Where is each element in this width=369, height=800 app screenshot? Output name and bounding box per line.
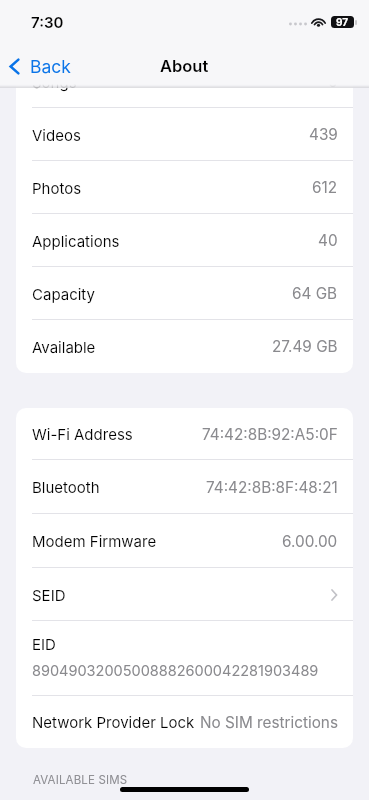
button[interactable]: Applications bbox=[16, 214, 353, 267]
button[interactable]: SEID bbox=[16, 568, 353, 621]
staticText: Network Provider Lock bbox=[32, 713, 195, 731]
button[interactable]: Wi-Fi Address bbox=[16, 408, 353, 460]
staticText: 64 GB bbox=[292, 284, 338, 303]
button[interactable]: Songs bbox=[16, 55, 353, 108]
staticText: Bluetooth bbox=[32, 478, 100, 496]
staticText: SEID bbox=[32, 586, 66, 604]
button[interactable]: Videos bbox=[16, 108, 353, 161]
button[interactable]: Bluetooth bbox=[16, 460, 353, 514]
button[interactable]: Modem Firmware bbox=[16, 514, 353, 568]
staticText: 89049032005008882600042281903489 bbox=[32, 662, 319, 680]
button[interactable]: Capacity bbox=[16, 267, 353, 320]
button[interactable]: Network Provider Lock bbox=[16, 696, 353, 748]
staticText: 74:42:8B:8F:48:21 bbox=[206, 478, 338, 497]
staticText: Capacity bbox=[32, 285, 95, 303]
button[interactable]: Back bbox=[0, 52, 79, 81]
staticText: 27.49 GB bbox=[272, 337, 338, 356]
staticText: 6.00.00 bbox=[282, 532, 338, 551]
button[interactable]: Available bbox=[16, 320, 353, 373]
staticText: Videos bbox=[32, 126, 81, 144]
staticText: EID bbox=[32, 635, 56, 653]
staticText: AVAILABLE SIMS bbox=[33, 773, 128, 787]
staticText: Back bbox=[30, 56, 71, 77]
staticText: Applications bbox=[32, 232, 120, 250]
staticText: 612 bbox=[312, 178, 338, 197]
button[interactable]: EID bbox=[16, 621, 353, 696]
staticText: 74:42:8B:92:A5:0F bbox=[202, 425, 338, 444]
staticText: 7:30 bbox=[31, 13, 64, 31]
other: Open SEID details bbox=[331, 589, 338, 601]
staticText: Photos bbox=[32, 179, 82, 197]
staticText: Songs bbox=[32, 73, 77, 91]
staticText: 97 bbox=[336, 16, 349, 28]
button[interactable]: Photos bbox=[16, 161, 353, 214]
staticText: Wi-Fi Address bbox=[32, 425, 133, 443]
staticText: 439 bbox=[309, 125, 338, 144]
staticText: 40 bbox=[318, 231, 338, 250]
staticText: No SIM restrictions bbox=[200, 713, 338, 732]
other: Back bbox=[9, 58, 20, 75]
staticText: Modem Firmware bbox=[32, 532, 157, 550]
staticText: About bbox=[160, 56, 209, 76]
staticText: 0 bbox=[328, 72, 338, 91]
staticText: Available bbox=[32, 338, 96, 356]
